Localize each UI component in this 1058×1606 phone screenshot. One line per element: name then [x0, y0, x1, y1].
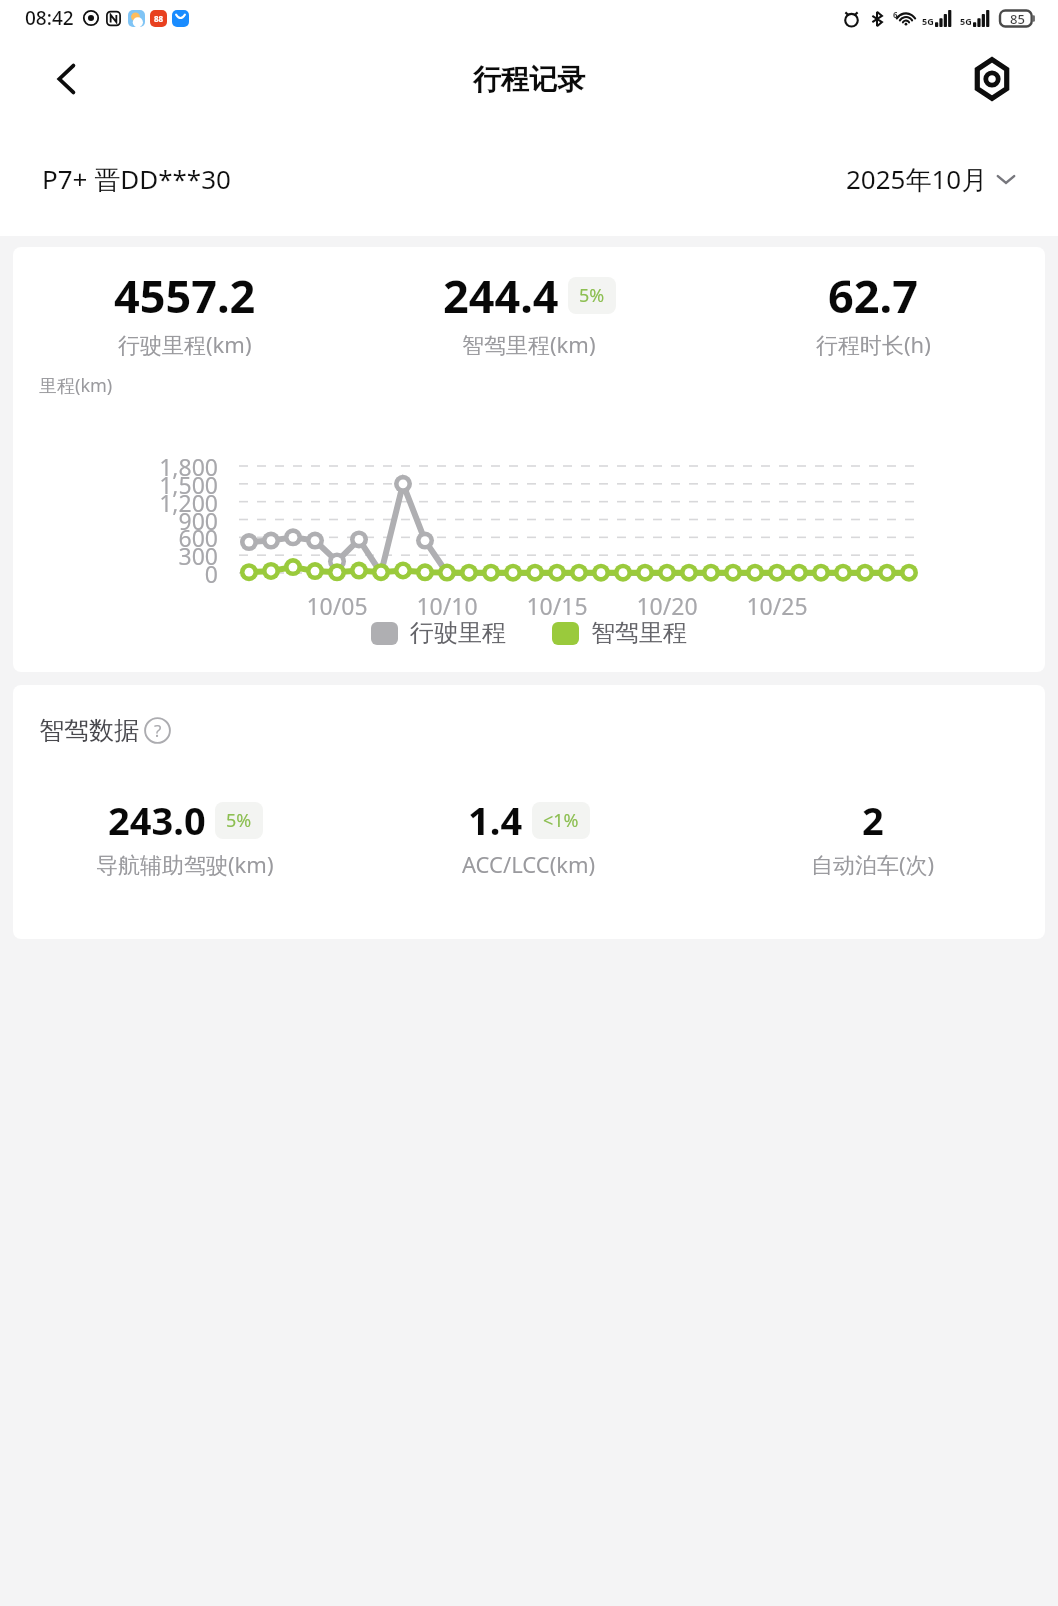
staticText: 行驶里程(km) — [118, 329, 252, 359]
staticText: 243.0 — [108, 794, 206, 846]
staticText: 88 — [154, 13, 164, 24]
staticText: 5G — [922, 15, 934, 27]
staticText: 1,800 — [128, 451, 218, 482]
staticText: 智驾里程 — [591, 618, 687, 648]
staticText: 行驶里程 — [410, 618, 506, 648]
staticText: 行程记录 — [473, 62, 585, 97]
staticText: 智驾里程(km) — [462, 329, 596, 359]
staticText: 自动泊车(次) — [811, 849, 935, 879]
button[interactable]: 智驾里程 — [552, 618, 687, 648]
staticText: 300 — [128, 540, 218, 571]
staticText: 2 — [862, 794, 884, 846]
button[interactable]: 行驶里程 — [371, 618, 506, 648]
staticText: 10/10 — [387, 590, 507, 621]
button[interactable]: 243.0 — [13, 794, 357, 879]
staticText: <1% — [543, 808, 579, 833]
staticText: 智驾数据 — [39, 715, 139, 746]
staticText: 1.4 — [468, 794, 523, 846]
button[interactable]: 2 — [701, 794, 1045, 879]
staticText: 10/25 — [717, 590, 837, 621]
staticText: 5% — [226, 808, 252, 833]
staticText: 里程(km) — [39, 373, 113, 398]
button[interactable]: 244.4 — [357, 265, 701, 359]
staticText: 1,200 — [128, 487, 218, 518]
button[interactable]: 62.7 — [701, 265, 1045, 359]
staticText: 6 — [893, 9, 898, 20]
button[interactable]: 1.4 — [357, 794, 701, 879]
staticText: 行程时长(h) — [816, 329, 931, 359]
staticText: 600 — [128, 522, 218, 553]
staticText: ? — [154, 719, 162, 742]
staticText: 85 — [1010, 10, 1025, 28]
staticText: 62.7 — [828, 265, 918, 326]
staticText: 导航辅助驾驶(km) — [96, 849, 274, 879]
staticText: 244.4 — [443, 265, 559, 326]
staticText: 10/05 — [277, 590, 397, 621]
staticText: 1,500 — [128, 469, 218, 500]
staticText: 2025年10月 — [846, 161, 988, 197]
staticText: 10/15 — [497, 590, 617, 621]
staticText: 5% — [579, 283, 605, 308]
button[interactable]: Settings — [962, 49, 1022, 109]
staticText: ACC/LCC(km) — [462, 849, 596, 879]
button[interactable]: Back — [38, 50, 96, 108]
staticText: 5G — [960, 15, 972, 27]
button[interactable]: 智驾数据 — [39, 715, 171, 746]
button[interactable]: 4557.2 — [13, 265, 357, 359]
staticText: 4557.2 — [114, 265, 256, 326]
staticText: 900 — [128, 505, 218, 536]
button[interactable]: 2025年10月 — [846, 161, 1018, 197]
staticText: 10/20 — [607, 590, 727, 621]
staticText: 0 — [128, 558, 218, 589]
staticText: 08:42 — [25, 5, 74, 31]
staticText: P7+ 晋DD***30 — [42, 161, 231, 197]
